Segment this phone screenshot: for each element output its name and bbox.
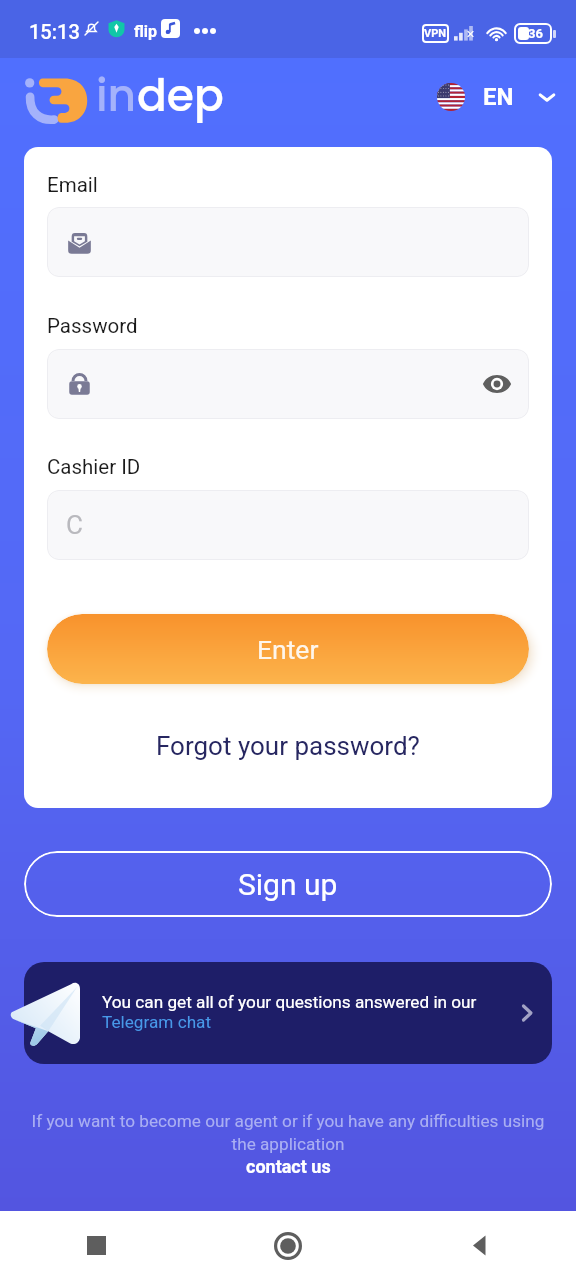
button[interactable]: You can get all of your questions answer… [24,962,552,1064]
button[interactable]: Recents [0,1211,192,1280]
button[interactable]: Enter [47,614,529,684]
staticText: VPN [424,27,447,40]
button[interactable]: Back [384,1211,576,1280]
staticText: EN [483,83,514,111]
staticText: Telegram chat [102,1012,212,1032]
button[interactable]: Show password [47,349,529,419]
button[interactable]: Home [192,1211,384,1280]
button[interactable]: contact us [246,1156,331,1177]
button[interactable]: Show password [477,364,517,404]
staticText: 36 [528,26,543,41]
staticText: 15:13 [29,20,80,43]
staticText: If you want to become our agent or if yo… [28,1111,548,1154]
staticText: You can get all of your questions answer… [102,992,477,1012]
button[interactable] [47,207,529,277]
staticText: Cashier ID [47,455,141,479]
staticText: dep [137,65,224,127]
staticText: in [96,65,137,127]
staticText: Enter [257,634,319,665]
button[interactable]: EN [437,83,556,111]
button[interactable]: C [47,490,529,560]
button[interactable]: Sign up [24,851,552,917]
staticText: flip [134,22,158,41]
staticText: Password [47,314,138,338]
staticText: C [66,510,83,540]
button[interactable]: Forgot your password? [146,725,430,767]
staticText: Email [47,173,98,197]
staticText: Sign up [238,867,338,902]
